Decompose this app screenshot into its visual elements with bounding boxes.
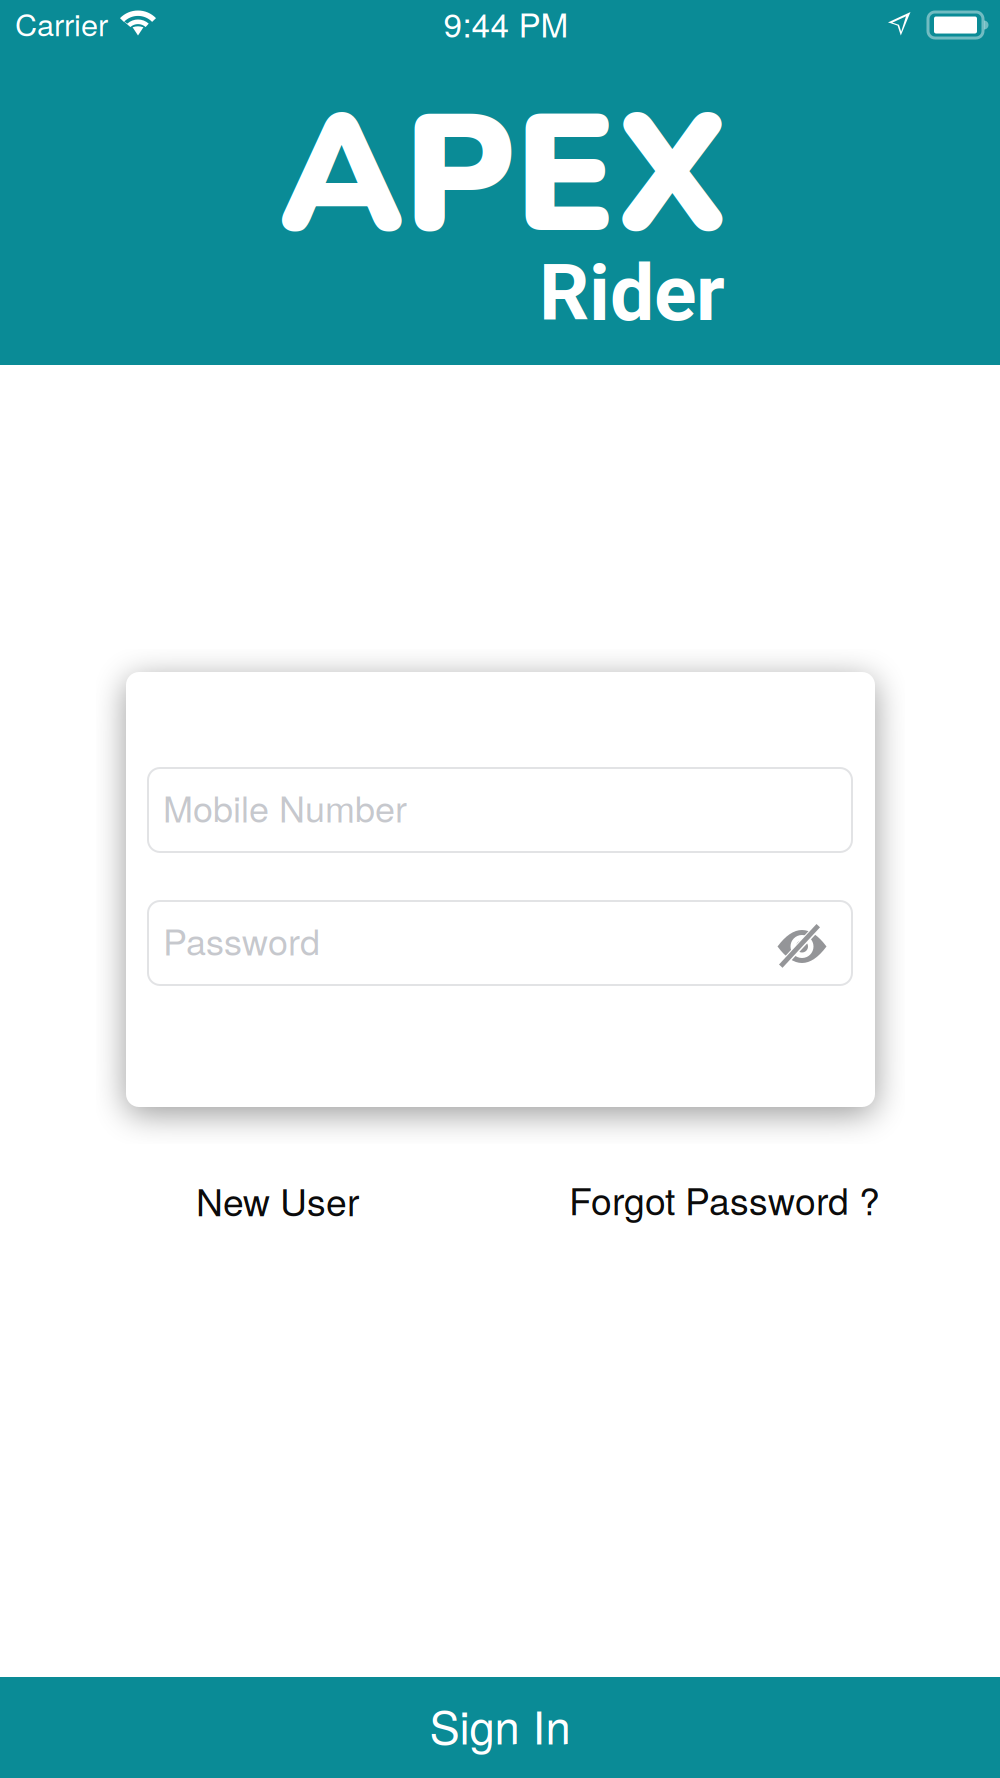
button[interactable]: Forgot Password ? [569,1173,899,1225]
staticText: Forgot Password ? [569,1172,880,1226]
staticText: New User [196,1173,359,1227]
staticText: Carrier [15,1,108,45]
staticText: Sign In [429,1692,570,1757]
staticText: Rider [539,247,725,339]
button[interactable]: New User [196,1174,396,1226]
staticText: Mobile Number [163,781,407,833]
button[interactable]: Mobile Number [148,768,852,852]
staticText: Password [163,914,320,966]
button[interactable]: Show password [766,917,838,989]
staticText: APEX [279,64,729,288]
staticText: 9:44 PM [443,0,568,47]
button[interactable]: Password [148,901,852,985]
button[interactable]: Sign In [0,1677,1000,1778]
